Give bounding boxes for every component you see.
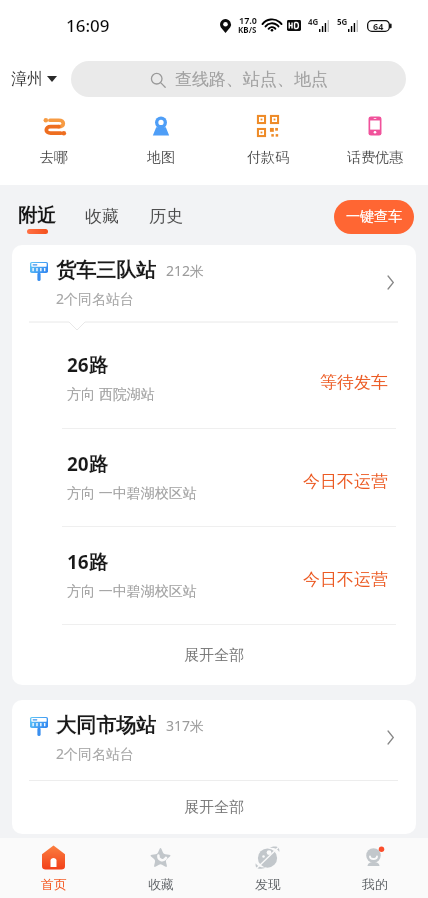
button[interactable]: 16路 [12,527,416,625]
button[interactable]: 附近 [14,204,60,234]
button[interactable]: 货车三队站 [12,245,416,315]
staticText: 收藏 [85,206,119,227]
button[interactable]: 一键查车 [334,200,414,234]
staticText: 方向 一中碧湖校区站 [67,483,197,502]
staticText: 去哪 [40,149,68,167]
staticText: 漳州 [11,69,43,89]
other: 查看详情 [387,276,394,289]
button[interactable]: 展开全部 [12,625,416,685]
staticText: 26路 [67,352,108,378]
button[interactable]: 历史 [145,204,187,227]
staticText: 方向 西院湖站 [67,384,155,403]
button[interactable]: 付款码 [214,105,321,167]
staticText: 查线路、站点、地点 [175,69,328,90]
button[interactable]: 26路 [12,330,416,429]
staticText: 地图 [147,149,175,167]
staticText: 64 [373,20,384,32]
button[interactable]: 地图 [107,105,214,167]
button[interactable]: 首页 [0,838,107,898]
button[interactable]: 我的 [321,838,428,898]
staticText: 今日不运营 [303,471,388,492]
staticText: 等待发车 [320,372,388,393]
staticText: 16:09 [66,14,110,37]
staticText: 5G [337,16,348,27]
staticText: 17.0 [239,14,257,26]
staticText: 货车三队站 [56,258,156,283]
button[interactable]: 发现 [214,838,321,898]
staticText: 2个同名站台 [56,744,135,763]
staticText: 212米 [166,261,205,280]
staticText: 付款码 [247,149,289,167]
staticText: 大同市场站 [56,713,156,738]
button[interactable]: 去哪 [0,105,107,167]
staticText: 我的 [362,876,388,892]
button[interactable]: 查线路、站点、地点 [71,61,406,97]
staticText: 20路 [67,451,108,477]
staticText: 话费优惠 [347,149,403,167]
button[interactable]: 20路 [12,429,416,527]
staticText: KB/S [238,24,257,35]
staticText: 发现 [255,876,281,892]
button[interactable]: 收藏 [107,838,214,898]
other: 查看详情 [387,731,394,744]
staticText: 方向 一中碧湖校区站 [67,581,197,600]
staticText: 4G [308,16,319,27]
button[interactable]: 大同市场站 [12,700,416,770]
staticText: 附近 [18,204,56,228]
staticText: 展开全部 [184,798,244,817]
button[interactable]: 漳州 [11,63,57,95]
staticText: 2个同名站台 [56,289,135,308]
staticText: 历史 [149,206,183,227]
button[interactable]: 收藏 [81,204,123,227]
button[interactable]: 展开全部 [12,781,416,834]
staticText: 一键查车 [346,208,402,226]
staticText: 展开全部 [184,646,244,665]
staticText: 收藏 [148,876,174,892]
staticText: 首页 [41,876,67,892]
staticText: 16路 [67,549,108,575]
staticText: 今日不运营 [303,569,388,590]
staticText: 317米 [166,716,205,735]
button[interactable]: 话费优惠 [321,105,428,167]
